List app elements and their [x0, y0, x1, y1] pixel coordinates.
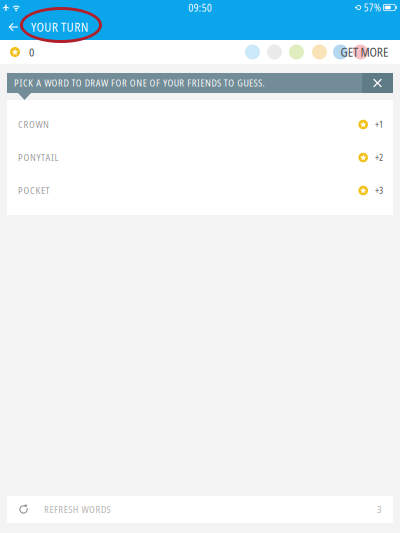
button[interactable]: Close — [362, 73, 393, 93]
staticText: +1 — [375, 119, 383, 130]
button[interactable]: 0 — [0, 38, 34, 66]
staticText: 3 — [377, 503, 381, 516]
staticText: PONYTAIL — [18, 151, 58, 164]
staticText: 09:50 — [188, 0, 212, 15]
staticText: YOUR TURN — [31, 19, 89, 35]
staticText: CROWN — [18, 118, 49, 131]
staticText: GET MORE — [341, 44, 388, 60]
button[interactable]: POCKET — [7, 174, 393, 207]
button[interactable]: CROWN — [7, 108, 393, 141]
staticText: 57% — [364, 1, 381, 14]
staticText: PICK A WORD TO DRAW FOR ONE OF YOUR FRIE… — [14, 77, 264, 89]
button[interactable]: Back — [0, 16, 26, 38]
button[interactable]: REFRESH WORDS — [7, 496, 393, 523]
staticText: POCKET — [18, 184, 49, 197]
button[interactable]: PONYTAIL — [7, 141, 393, 174]
staticText: +2 — [375, 152, 383, 163]
button[interactable]: GET MORE — [217, 40, 400, 64]
staticText: +3 — [375, 185, 383, 196]
staticText: REFRESH WORDS — [44, 503, 110, 516]
button[interactable]: YOUR TURN — [26, 14, 99, 40]
staticText: 0 — [29, 44, 34, 60]
